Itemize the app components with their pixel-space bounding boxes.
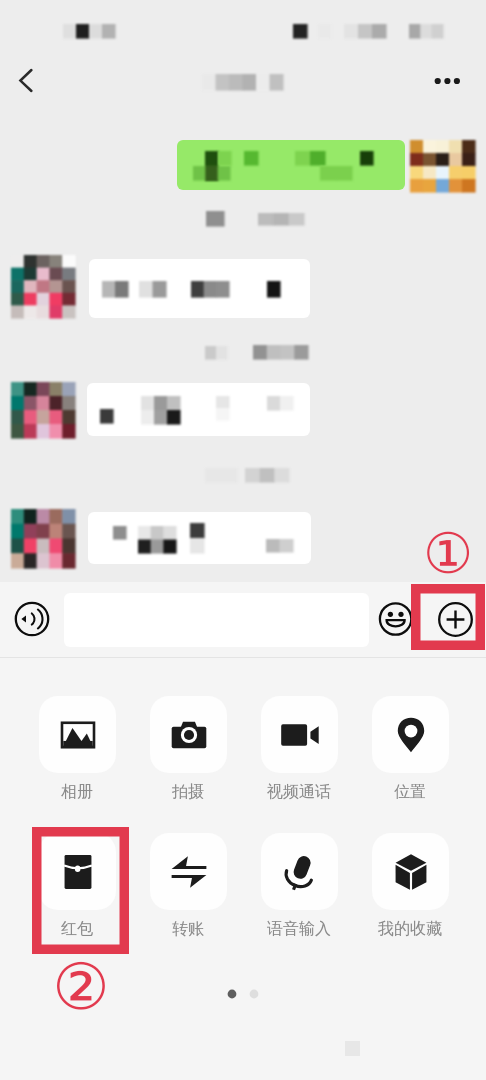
button[interactable]: 相册 bbox=[27, 696, 127, 802]
staticText: ① bbox=[419, 521, 477, 586]
button[interactable] bbox=[177, 140, 405, 190]
button[interactable]: 我的收藏 bbox=[360, 833, 460, 939]
staticText: 视频通话 bbox=[249, 782, 349, 802]
button[interactable]: More functions bbox=[433, 597, 477, 641]
button[interactable] bbox=[89, 259, 310, 318]
button[interactable] bbox=[87, 383, 310, 436]
button[interactable]: 语音输入 bbox=[249, 833, 349, 939]
staticText: 我的收藏 bbox=[360, 919, 460, 939]
staticText: 位置 bbox=[360, 782, 460, 802]
button[interactable]: Voice input bbox=[10, 597, 54, 641]
staticText: 红包 bbox=[27, 919, 127, 939]
button[interactable]: 红包 bbox=[27, 833, 127, 939]
staticText: 转账 bbox=[138, 919, 238, 939]
button[interactable]: Back bbox=[2, 57, 50, 105]
button[interactable]: 视频通话 bbox=[249, 696, 349, 802]
staticText: ② bbox=[49, 950, 113, 1025]
staticText: 语音输入 bbox=[249, 919, 349, 939]
button[interactable]: 转账 bbox=[138, 833, 238, 939]
button[interactable] bbox=[88, 512, 311, 564]
button[interactable]: 位置 bbox=[360, 696, 460, 802]
staticText: 拍摄 bbox=[138, 782, 238, 802]
staticText: 相册 bbox=[27, 782, 127, 802]
button[interactable]: More options bbox=[423, 57, 471, 105]
button[interactable]: Emoji bbox=[374, 597, 418, 641]
button[interactable]: 拍摄 bbox=[138, 696, 238, 802]
